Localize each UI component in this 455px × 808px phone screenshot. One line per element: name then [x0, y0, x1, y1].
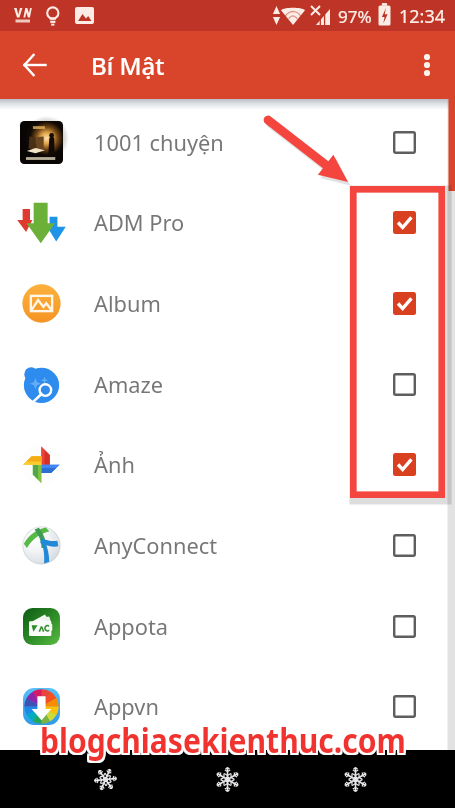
staticText: blogchiasekienthuc.com: [38, 719, 404, 763]
button[interactable]: Recent apps: [326, 750, 384, 808]
staticText: Appvn: [94, 692, 159, 722]
staticText: blogchiasekienthuc.com: [41, 719, 408, 763]
staticText: blogchiasekienthuc.com: [40, 715, 406, 759]
button[interactable]: 1001 chuyện: [0, 102, 455, 183]
button[interactable]: Back: [76, 750, 134, 808]
button[interactable]: Album: [0, 263, 455, 344]
staticText: 97%: [338, 5, 372, 28]
staticText: Appota: [94, 612, 169, 642]
staticText: Bí Mật: [91, 49, 165, 82]
staticText: 1001 chuyện: [94, 128, 224, 158]
button[interactable]: Appota: [0, 586, 455, 667]
staticText: blogchiasekienthuc.com: [40, 719, 406, 763]
staticText: blogchiasekienthuc.com: [38, 715, 404, 759]
staticText: blogchiasekienthuc.com: [40, 717, 406, 761]
button[interactable]: More options: [405, 43, 449, 87]
staticText: 12:34: [399, 4, 446, 29]
button[interactable]: Appvn: [0, 666, 455, 747]
staticText: blogchiasekienthuc.com: [41, 717, 408, 761]
button[interactable]: ADM Pro: [0, 182, 455, 263]
button[interactable]: Home: [198, 750, 256, 808]
button[interactable]: Ảnh: [0, 424, 455, 505]
staticText: Album: [94, 289, 161, 319]
staticText: Ảnh: [94, 450, 135, 480]
staticText: blogchiasekienthuc.com: [41, 715, 408, 759]
button[interactable]: AnyConnect: [0, 505, 455, 586]
staticText: blogchiasekienthuc.com: [38, 717, 404, 761]
staticText: Amaze: [94, 370, 164, 400]
staticText: AnyConnect: [94, 531, 218, 561]
staticText: ADM Pro: [94, 208, 185, 238]
button[interactable]: Back: [13, 43, 57, 87]
button[interactable]: Amaze: [0, 344, 455, 425]
